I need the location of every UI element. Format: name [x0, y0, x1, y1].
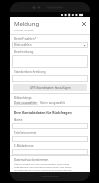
staticText: Ihre Kontaktdaten für Rückfragen [14, 110, 72, 115]
staticText: Telefonnummer [14, 131, 37, 135]
staticText: Betreff wählen* [14, 37, 37, 41]
staticText: der Bearbeitung meiner Meldung verarbeit… [14, 169, 72, 172]
staticText: GPS Koordinaten hinzufügen [30, 86, 71, 90]
staticText: Hiermit erkläre ich mich einverstanden, … [14, 163, 70, 166]
staticText: Beschreibung [14, 50, 34, 54]
staticText: Bildanhänge [14, 96, 32, 100]
button[interactable] [12, 55, 88, 68]
staticText: Formular ausfüllen [14, 29, 34, 32]
button[interactable] [12, 123, 88, 129]
button[interactable]: Bitte wählen [12, 42, 88, 48]
button[interactable]: Datei auswählen [14, 101, 38, 105]
staticText: Bitte wählen [14, 43, 32, 47]
staticText: E-Mailadresse [14, 144, 34, 148]
button[interactable]: Schließen [80, 20, 87, 27]
staticText: Datei auswählen [14, 101, 38, 105]
staticText: Keine ausgewählt [40, 101, 65, 105]
button[interactable]: GPS Koordinaten hinzufügen [13, 84, 87, 91]
staticText: Meldung [14, 20, 40, 28]
staticText: Standortbeschreibung [14, 70, 46, 74]
button[interactable] [12, 136, 88, 142]
staticText: Datenschutz bestimmen [14, 158, 49, 162]
button[interactable] [12, 75, 88, 82]
staticText: Name [14, 118, 23, 122]
staticText: angegebenen personenbezogenen Daten zum … [14, 166, 72, 169]
button[interactable] [12, 149, 88, 155]
